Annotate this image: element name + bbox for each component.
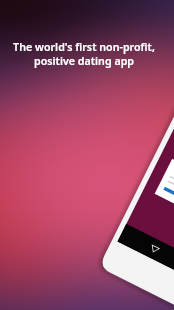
staticText: The world's first non-profit, positive d… [0, 40, 168, 68]
